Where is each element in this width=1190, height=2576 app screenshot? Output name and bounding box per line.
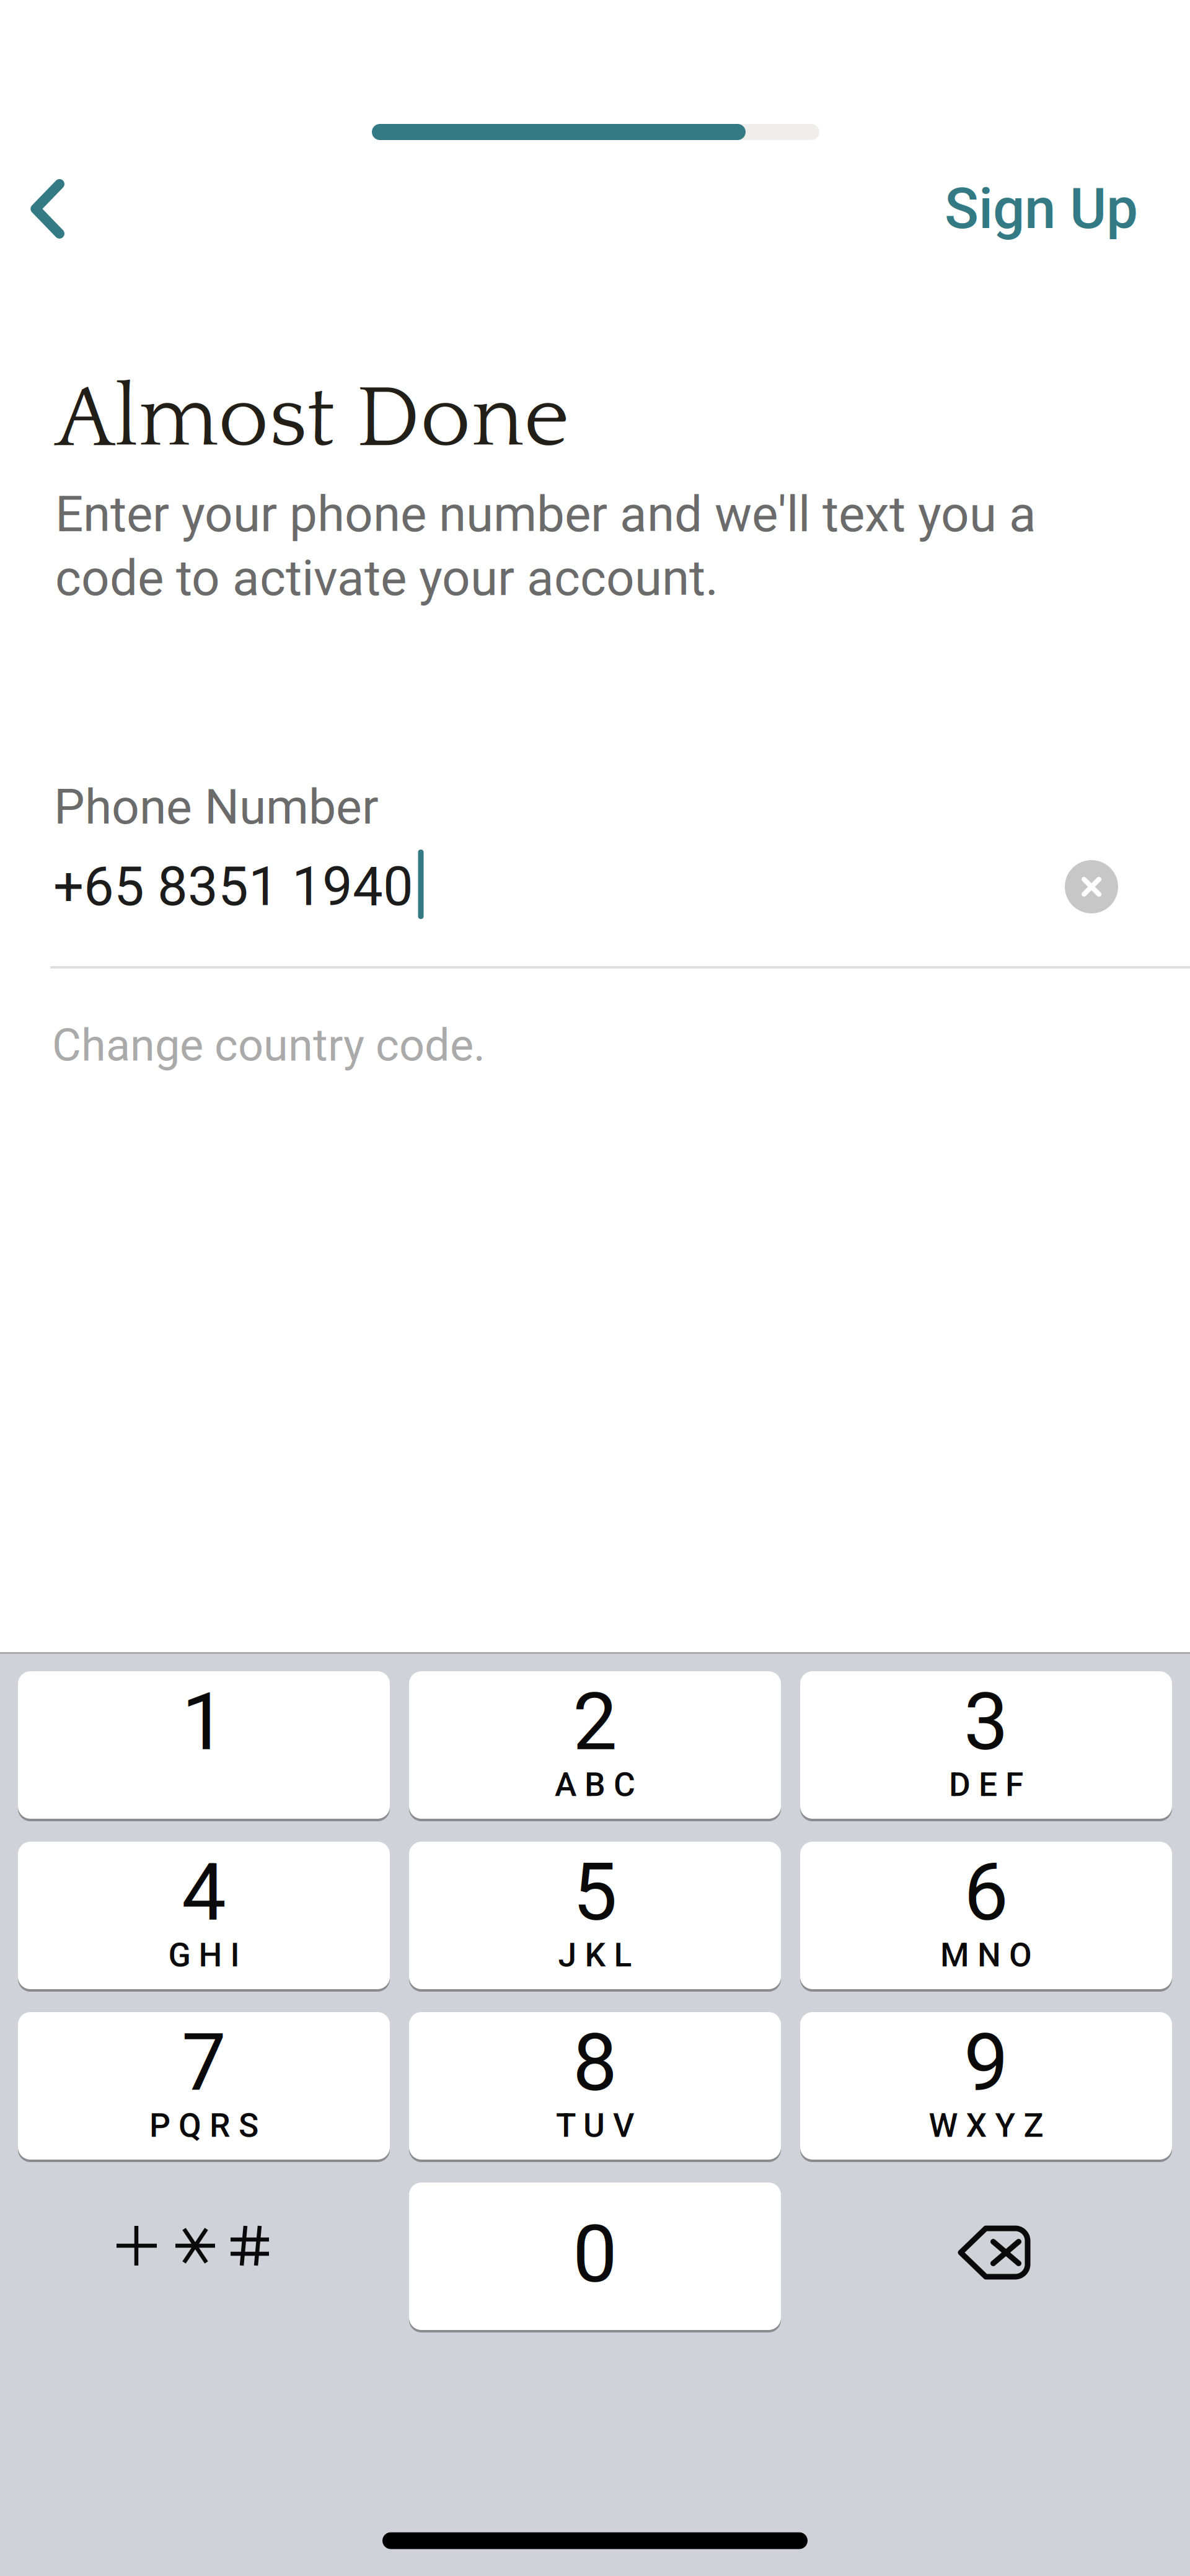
staticText: P Q R S <box>149 2106 258 2145</box>
staticText: Change country code. <box>52 1019 485 1072</box>
staticText: 3 <box>964 1676 1008 1769</box>
button[interactable]: Change country code. <box>52 1014 610 1076</box>
staticText: 0 <box>573 2208 617 2301</box>
staticText: 2 <box>573 1676 617 1769</box>
staticText: 9 <box>964 2016 1008 2109</box>
staticText: A B C <box>555 1765 635 1804</box>
staticText: G H I <box>168 1936 240 1974</box>
staticText: Phone Number <box>54 778 379 835</box>
button[interactable]: 4 <box>18 1842 390 1989</box>
button[interactable]: 3 <box>800 1671 1172 1819</box>
staticText: D E F <box>949 1765 1023 1804</box>
button[interactable]: 8 <box>409 2012 781 2160</box>
staticText: J K L <box>558 1936 632 1974</box>
staticText: 1 <box>182 1676 226 1769</box>
staticText: code to activate your account. <box>55 549 718 607</box>
staticText: 8 <box>573 2016 617 2109</box>
button[interactable]: Sign Up <box>917 159 1165 258</box>
staticText: Sign Up <box>945 176 1138 242</box>
staticText: Enter your phone number and we'll text y… <box>55 485 1036 543</box>
button[interactable]: Symbols <box>7 2172 379 2319</box>
staticText: 7 <box>182 2016 226 2109</box>
button[interactable]: 0 <box>409 2183 781 2330</box>
staticText: M N O <box>940 1936 1032 1974</box>
staticText: +65 8351 1940 <box>53 855 413 918</box>
staticText: T U V <box>556 2106 634 2145</box>
button[interactable]: Delete <box>808 2179 1180 2326</box>
button[interactable]: 2 <box>409 1671 781 1819</box>
staticText: 6 <box>964 1846 1008 1939</box>
staticText: 4 <box>182 1846 226 1939</box>
staticText: 5 <box>573 1846 617 1939</box>
staticText: W X Y Z <box>929 2106 1043 2145</box>
button[interactable]: 1 <box>18 1671 390 1819</box>
staticText: Almost Done <box>56 371 570 467</box>
button[interactable]: 5 <box>409 1842 781 1989</box>
button[interactable]: 6 <box>800 1842 1172 1989</box>
button[interactable]: 7 <box>18 2012 390 2160</box>
button[interactable]: Back <box>0 150 109 268</box>
button[interactable]: Clear text <box>1045 840 1138 933</box>
button[interactable]: 9 <box>800 2012 1172 2160</box>
